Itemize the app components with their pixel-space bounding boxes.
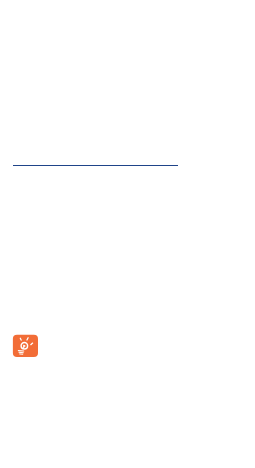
button[interactable]: Open link [13, 151, 178, 166]
button[interactable]: App icon [12, 334, 38, 358]
